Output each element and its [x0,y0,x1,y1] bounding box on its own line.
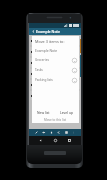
button[interactable]: Navigate up [31,29,36,34]
button[interactable]: Edit [34,130,39,135]
button[interactable]: Recent apps [66,137,73,144]
staticText: New list [37,110,50,114]
button[interactable]: Tasks [32,65,79,75]
button[interactable]: Move [41,130,46,135]
staticText: Level up [60,110,74,114]
button[interactable]: Back [37,137,44,144]
staticText: Example Note [35,48,58,53]
staticText: Move 3 items to: [35,39,65,44]
staticText: Move to this list [44,118,67,122]
staticText: 3 [74,79,76,82]
staticText: 4 [74,69,76,72]
button[interactable]: More options [71,130,76,135]
button[interactable]: Example Note [32,46,79,55]
button[interactable]: Groceries [32,55,79,65]
button[interactable]: Move to this list [32,116,79,123]
button[interactable]: Home [52,137,59,144]
button[interactable]: Share [56,130,61,135]
button[interactable]: Packing lists [32,75,79,85]
button[interactable]: New list [32,107,55,116]
staticText: Packing lists [35,78,53,82]
staticText: Groceries [35,58,49,62]
staticText: 2 [74,59,76,62]
button[interactable]: Expand [64,130,69,135]
button[interactable]: Delete [49,130,54,135]
staticText: Example Note [36,29,61,34]
button[interactable]: Level up [55,107,79,116]
staticText: Tasks [35,68,43,72]
